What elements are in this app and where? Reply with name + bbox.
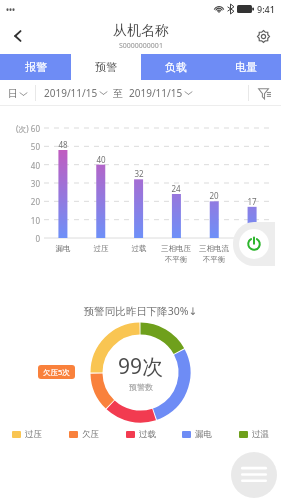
- staticText: 99次: [118, 352, 164, 381]
- staticText: 漏电: [41, 244, 85, 253]
- staticText: 过温: [230, 244, 274, 253]
- staticText: 过压: [79, 244, 123, 253]
- staticText: 三相电流 不平衡: [192, 244, 236, 264]
- staticText: S0000000001: [119, 41, 163, 51]
- staticText: 预警同比昨日下降30%↓: [0, 304, 281, 318]
- staticText: 48: [51, 139, 75, 150]
- staticText: 过载: [139, 429, 156, 440]
- button[interactable]: 2019/11/15: [44, 86, 107, 100]
- button[interactable]: Menu: [231, 452, 277, 498]
- button[interactable]: 负载: [141, 54, 211, 80]
- staticText: 2019/11/15: [129, 86, 183, 100]
- button[interactable]: 电量: [211, 54, 281, 80]
- button[interactable]: 2019/11/15: [129, 86, 192, 100]
- staticText: 日: [8, 87, 18, 100]
- button[interactable]: Power: [233, 222, 275, 266]
- button[interactable]: Filter: [255, 84, 273, 102]
- staticText: 过温: [252, 429, 269, 440]
- button[interactable]: 日: [8, 87, 27, 100]
- staticText: 过压: [25, 429, 42, 440]
- staticText: 至: [113, 87, 123, 100]
- staticText: 17: [240, 196, 264, 207]
- staticText: 10: [0, 215, 40, 226]
- staticText: 20: [202, 190, 226, 201]
- button[interactable]: Settings: [245, 18, 281, 54]
- staticText: 20: [0, 196, 40, 207]
- staticText: 负载: [165, 60, 187, 74]
- button[interactable]: 报警: [0, 54, 71, 80]
- staticText: 报警: [25, 60, 47, 74]
- staticText: 50: [0, 141, 40, 152]
- staticText: 40: [0, 160, 40, 171]
- staticText: 0: [0, 233, 40, 244]
- staticText: 漏电: [195, 429, 212, 440]
- staticText: 欠压5次: [43, 367, 70, 377]
- staticText: 40: [89, 154, 113, 165]
- staticText: 30: [0, 178, 40, 189]
- button[interactable]: 预警: [71, 54, 141, 80]
- staticText: •••: [6, 4, 16, 15]
- staticText: 预警数: [129, 382, 153, 392]
- staticText: 预警: [95, 60, 117, 74]
- staticText: 从机名称: [113, 22, 169, 40]
- staticText: 三相电压 不平衡: [154, 244, 198, 264]
- staticText: 电量: [235, 60, 257, 74]
- staticText: (次) 60: [0, 123, 40, 134]
- staticText: 9:41: [257, 3, 275, 15]
- staticText: 欠压: [82, 429, 99, 440]
- staticText: 24: [164, 183, 188, 194]
- staticText: 32: [127, 168, 151, 179]
- button[interactable]: Back: [0, 18, 36, 54]
- staticText: 2019/11/15: [44, 86, 98, 100]
- staticText: 过载: [117, 244, 161, 253]
